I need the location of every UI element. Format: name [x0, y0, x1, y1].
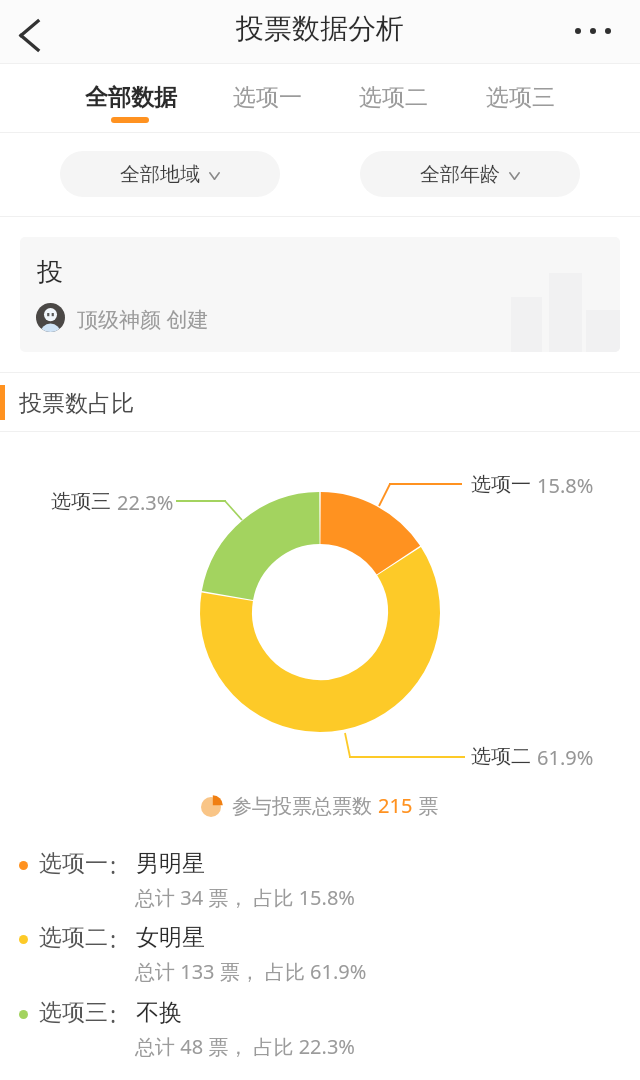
button[interactable]: 选项一	[0, 837, 640, 911]
staticText: 22.3%	[117, 489, 174, 516]
staticText: 总计 48 票， 占比 22.3%	[135, 1033, 355, 1060]
staticText: 选项一	[233, 83, 302, 112]
staticText: 选项二	[471, 744, 531, 769]
staticText: 总计 133 票， 占比 61.9%	[135, 958, 367, 985]
staticText: 不换	[136, 998, 182, 1027]
button[interactable]: More options	[562, 3, 624, 59]
button[interactable]: 全部地域	[60, 151, 280, 197]
staticText: 选项三	[486, 83, 555, 112]
staticText: 选项一	[471, 472, 531, 497]
staticText: 61.9%	[537, 744, 594, 771]
button[interactable]: 全部数据	[71, 64, 191, 132]
button[interactable]: 选项一	[207, 64, 327, 132]
staticText: 全部数据	[85, 83, 177, 112]
staticText: :	[110, 849, 117, 880]
staticText: 投票数占比	[19, 389, 134, 418]
button[interactable]: 投	[20, 237, 620, 352]
staticText: 顶级神颜 创建	[77, 305, 209, 334]
staticText: 全部地域	[120, 162, 200, 187]
staticText: :	[110, 923, 117, 954]
button[interactable]: 全部年龄	[360, 151, 580, 197]
staticText: 选项三	[51, 489, 111, 514]
staticText: 选项一	[39, 849, 108, 878]
button[interactable]: 选项三	[0, 986, 640, 1060]
staticText: 15.8%	[537, 472, 594, 499]
button[interactable]: Back	[0, 6, 58, 58]
button[interactable]: 选项二	[333, 64, 453, 132]
staticText: 选项二	[359, 83, 428, 112]
staticText: 参与投票总票数	[232, 792, 378, 819]
staticText: 选项三	[39, 998, 108, 1027]
staticText: 总计 34 票， 占比 15.8%	[135, 884, 355, 911]
staticText: 票	[413, 792, 439, 819]
button[interactable]: 选项二	[0, 911, 640, 985]
staticText: 全部年龄	[420, 162, 500, 187]
staticText: 投票数据分析	[236, 11, 404, 46]
staticText: 215	[378, 792, 413, 819]
staticText: 男明星	[136, 849, 205, 878]
staticText: 投	[37, 256, 63, 289]
staticText: 选项二	[39, 923, 108, 952]
staticText: :	[110, 998, 117, 1029]
button[interactable]: 选项三	[460, 64, 580, 132]
staticText: 女明星	[136, 923, 205, 952]
